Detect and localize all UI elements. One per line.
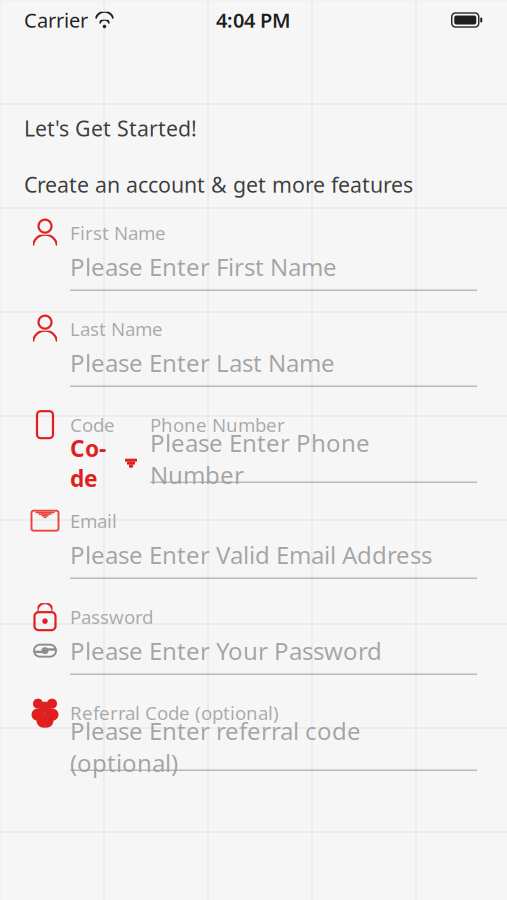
button[interactable]: First Name	[0, 217, 507, 291]
button[interactable]: Last Name	[0, 313, 507, 387]
staticText: Password	[70, 604, 153, 629]
staticText: Phone Number	[150, 412, 285, 437]
staticText: Please Enter Phone Number	[150, 427, 370, 490]
staticText: Create an account & get more features	[24, 170, 413, 199]
button[interactable]: Code	[30, 448, 150, 478]
button[interactable]: Referral Code (optional)	[0, 697, 507, 771]
staticText: Let's Get Started!	[24, 114, 197, 142]
button[interactable]: Password	[0, 601, 507, 675]
staticText: Please Enter Your Password	[70, 635, 382, 667]
button[interactable]: Email	[0, 505, 507, 579]
button[interactable]: Please Enter Phone Number	[150, 444, 477, 483]
staticText: Please Enter referral code (optional)	[70, 715, 361, 778]
staticText: Code	[70, 433, 106, 493]
staticText: Referral Code (optional)	[70, 700, 279, 725]
staticText: Please Enter Valid Email Address	[70, 539, 432, 571]
staticText: Please Enter First Name	[70, 251, 337, 283]
staticText: Please Enter Last Name	[70, 347, 335, 379]
staticText: Code	[70, 412, 115, 437]
staticText: First Name	[70, 220, 166, 245]
staticText: 4:04 PM	[216, 7, 291, 33]
staticText: Email	[70, 508, 117, 533]
staticText: Carrier	[24, 7, 88, 33]
staticText: Last Name	[70, 316, 163, 341]
